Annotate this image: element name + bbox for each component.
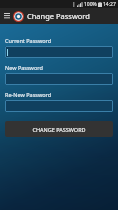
button[interactable]: Open navigation drawer [2,11,12,21]
staticText: New Password [5,64,43,71]
staticText: Change Password [27,11,90,21]
staticText: Re-New Password [5,91,52,98]
button[interactable]: Password input [5,46,113,58]
staticText: Current Password [5,37,52,44]
staticText: 100% [84,1,97,8]
button[interactable]: Password input [5,100,113,112]
button[interactable]: Password input [5,73,113,85]
button[interactable]: CHANGE PASSWORD [5,121,113,137]
staticText: CHANGE PASSWORD [32,126,86,133]
staticText: 14:27 [103,1,116,8]
